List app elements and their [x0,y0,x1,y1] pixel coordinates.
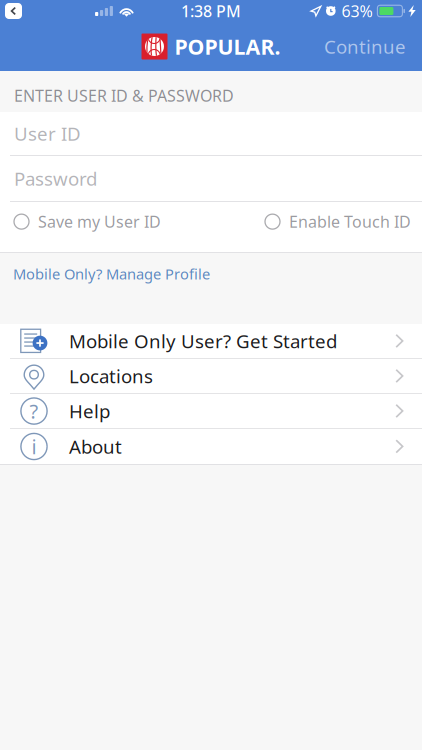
staticText: Password [14,166,97,191]
button[interactable]: Continue [314,26,416,67]
staticText: Mobile Only? Manage Profile [13,264,210,283]
staticText: 1:38 PM [181,0,241,22]
button[interactable]: i [0,429,422,464]
staticText: Mobile Only User? Get Started [69,329,337,353]
button[interactable]: Mobile Only? Manage Profile [13,260,210,287]
staticText: Help [69,399,110,423]
staticText: i [31,433,36,460]
staticText: POPULAR. [174,32,280,61]
staticText: Enable Touch ID [289,211,411,232]
button[interactable]: Enable Touch ID [265,202,411,241]
staticText: User ID [14,121,81,146]
staticText: Save my User ID [38,211,161,232]
staticText: ? [29,398,38,424]
button[interactable]: ? [0,394,422,429]
staticText: ENTER USER ID & PASSWORD [14,85,234,106]
staticText: About [69,434,122,459]
button[interactable]: Save my User ID [14,202,161,241]
button[interactable]: Locations [0,359,422,394]
staticText: Continue [324,34,406,59]
button[interactable]: Mobile Only User? Get Started [0,324,422,359]
staticText: 63% [341,0,372,22]
staticText: Locations [69,364,153,388]
button[interactable]: Back [5,3,22,19]
